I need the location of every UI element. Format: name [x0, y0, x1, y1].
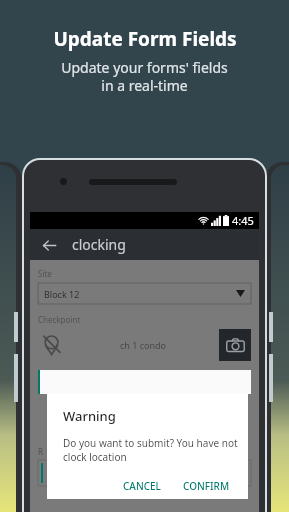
staticText: Warning [63, 407, 116, 425]
staticText: Update Form Fields [53, 26, 237, 52]
button[interactable]: Block 12 [38, 283, 251, 304]
button[interactable] [38, 460, 251, 486]
staticText: R [38, 446, 43, 457]
button[interactable]: CONFIRM [175, 474, 238, 498]
button[interactable]: CANCEL [115, 474, 169, 498]
staticText: Site [38, 268, 52, 279]
button[interactable]: Back [36, 232, 62, 258]
staticText: CONFIRM [183, 479, 230, 493]
staticText: Do you want to submit? You have not cloc… [63, 436, 238, 464]
button[interactable]: Location off [38, 331, 66, 359]
staticText: clocking [72, 235, 126, 254]
button[interactable]: Take photo [219, 329, 251, 361]
button[interactable] [38, 370, 251, 394]
staticText: ch 1 condo [120, 339, 167, 351]
staticText: Block 12 [44, 288, 80, 300]
staticText: Checkpoint [38, 314, 81, 325]
staticText: Update your forms' fields in a real-time [61, 58, 228, 95]
staticText: CANCEL [123, 479, 161, 493]
staticText: 4:45 [232, 213, 254, 228]
